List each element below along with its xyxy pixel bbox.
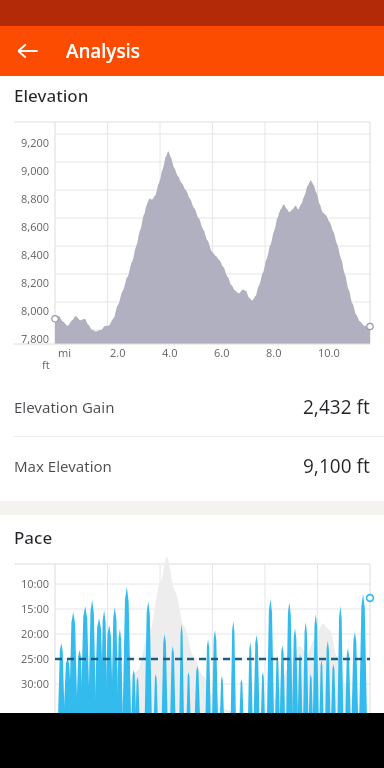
staticText: Analysis <box>66 38 140 64</box>
staticText: 4.0 <box>162 345 178 360</box>
button[interactable]: Elevation Gain <box>0 378 384 436</box>
staticText: 8,400 <box>21 247 50 262</box>
staticText: 8,200 <box>21 275 50 290</box>
staticText: 9,100 ft <box>303 453 370 479</box>
staticText: 8.0 <box>266 345 282 360</box>
staticText: Max Elevation <box>14 456 112 476</box>
staticText: 20:00 <box>21 626 50 641</box>
staticText: 6.0 <box>214 345 230 360</box>
staticText: 8,600 <box>21 219 50 234</box>
staticText: 9,200 <box>21 135 50 150</box>
staticText: 10.0 <box>318 345 340 360</box>
staticText: Elevation Gain <box>14 397 115 417</box>
staticText: 25:00 <box>21 651 50 666</box>
staticText: 2,432 ft <box>303 394 370 420</box>
staticText: 8,000 <box>21 303 50 318</box>
staticText: 30:00 <box>21 676 50 691</box>
staticText: ft <box>42 357 50 372</box>
staticText: mi <box>58 345 72 360</box>
staticText: 2.0 <box>110 345 126 360</box>
staticText: 10:00 <box>21 576 50 591</box>
staticText: 15:00 <box>21 601 50 616</box>
button[interactable]: Back <box>8 31 48 71</box>
staticText: 8,800 <box>21 191 50 206</box>
staticText: Pace <box>14 526 53 549</box>
staticText: 7,800 <box>21 331 50 346</box>
staticText: 9,000 <box>21 163 50 178</box>
staticText: Elevation <box>14 84 89 107</box>
button[interactable]: Max Elevation <box>0 437 384 495</box>
